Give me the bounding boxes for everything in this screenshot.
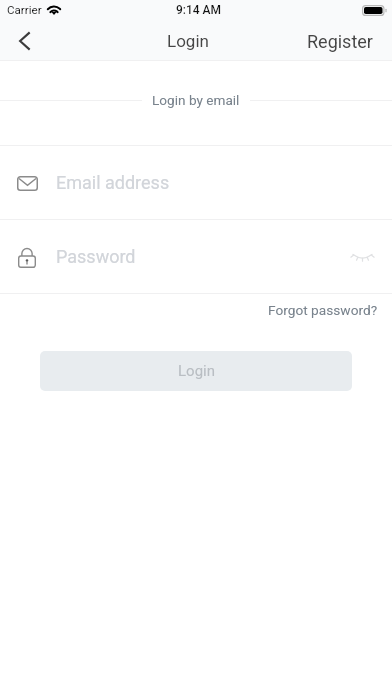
staticText: Login by email [152, 92, 240, 108]
button[interactable]: Login [40, 351, 352, 391]
staticText: 9:14 AM [176, 3, 222, 17]
staticText: Register [307, 31, 373, 52]
button[interactable]: Forgot password? [266, 300, 380, 320]
button[interactable]: Email address [0, 146, 392, 219]
staticText: Login [167, 31, 209, 51]
staticText: Forgot password? [268, 302, 378, 318]
button[interactable]: Show password [345, 242, 375, 272]
staticText: Email address [56, 172, 170, 193]
button[interactable]: Password [0, 220, 392, 293]
staticText: Login [178, 362, 215, 380]
button[interactable]: Back [5, 22, 43, 60]
staticText: Password [56, 246, 136, 267]
button[interactable]: Register [288, 23, 392, 60]
staticText: Carrier [7, 3, 42, 17]
